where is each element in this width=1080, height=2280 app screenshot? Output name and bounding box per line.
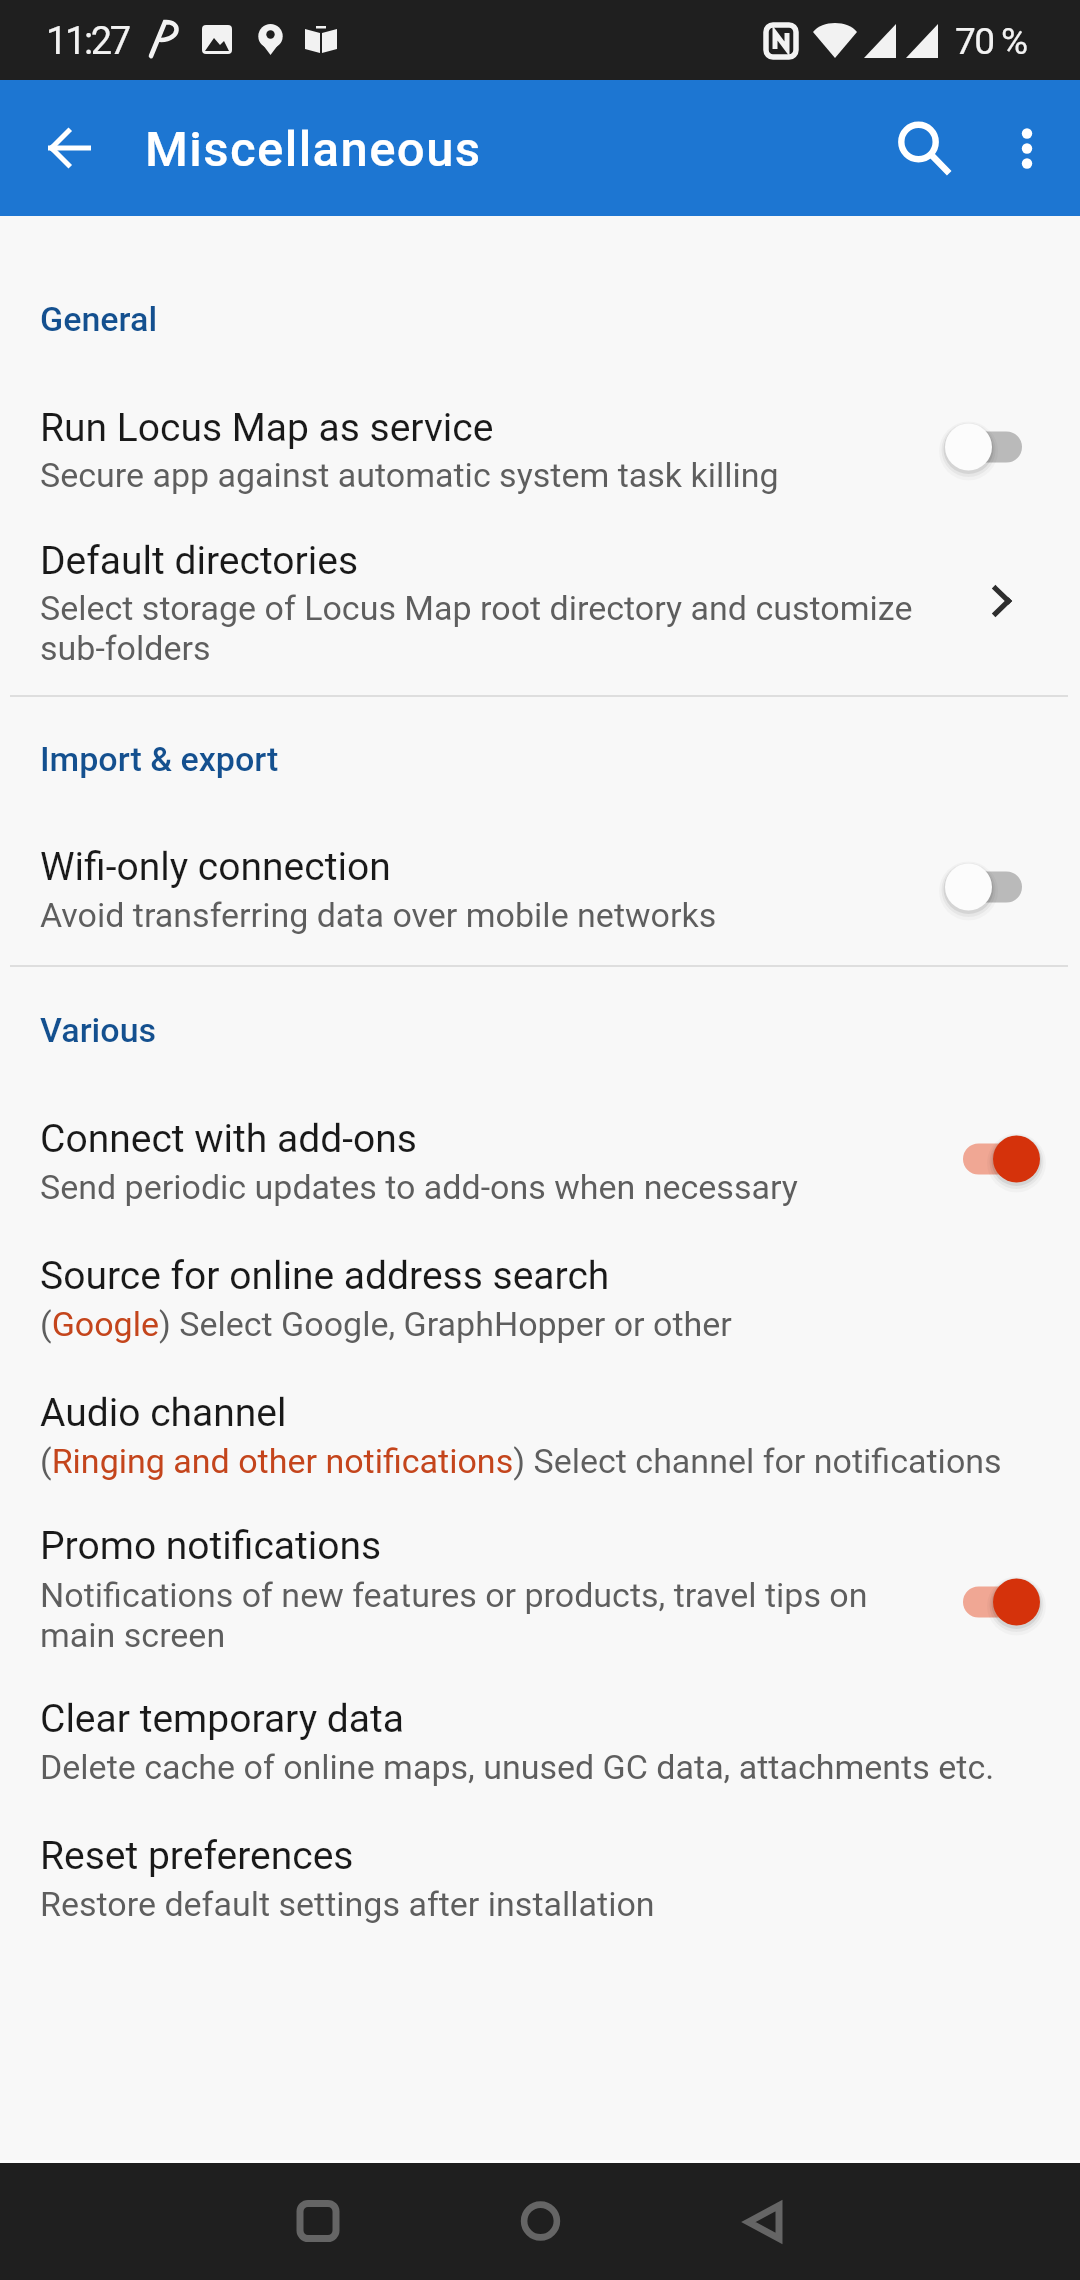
button[interactable]: Search <box>870 94 966 190</box>
button[interactable]: Reset preferences <box>0 1815 1080 1945</box>
button[interactable]: Promo notifications <box>0 1505 1080 1675</box>
staticText: main screen <box>40 1615 1050 1655</box>
staticText: (Google) Select Google, GraphHopper or o… <box>40 1304 1050 1344</box>
staticText: Promo notifications <box>40 1523 920 1569</box>
staticText: Default directories <box>40 538 920 584</box>
button[interactable]: Clear temporary data <box>0 1680 1080 1810</box>
button[interactable]: Source for online address search <box>0 1232 1080 1362</box>
staticText: 70 % <box>955 20 1080 63</box>
button[interactable]: Switch on <box>918 1111 1060 1207</box>
staticText: Reset preferences <box>40 1833 920 1879</box>
staticText: Audio channel <box>40 1390 920 1436</box>
staticText: sub-folders <box>40 628 1050 668</box>
staticText: Notifications of new features or product… <box>40 1575 1050 1615</box>
button[interactable]: Switch off <box>918 839 1060 935</box>
staticText: Miscellaneous <box>145 121 1080 178</box>
staticText: Send periodic updates to add-ons when ne… <box>40 1167 1050 1207</box>
button[interactable]: Switch off <box>918 399 1060 495</box>
staticText: Run Locus Map as service <box>40 405 920 451</box>
button[interactable]: Default directories <box>0 515 1080 690</box>
button[interactable]: Run Locus Map as service <box>0 380 1080 512</box>
staticText: Various <box>40 1010 1080 1050</box>
staticText: Source for online address search <box>40 1253 920 1299</box>
button[interactable]: Home <box>490 2171 590 2271</box>
button[interactable]: Navigate up <box>22 100 118 196</box>
staticText: General <box>40 299 1080 339</box>
button[interactable]: Recent apps <box>268 2171 368 2271</box>
button[interactable]: Wifi-only connection <box>0 820 1080 950</box>
staticText: Select storage of Locus Map root directo… <box>40 588 1050 628</box>
button[interactable]: More options <box>979 94 1075 190</box>
staticText: 11:27 <box>46 19 1080 64</box>
staticText: Wifi-only connection <box>40 844 920 890</box>
staticText: Avoid transferring data over mobile netw… <box>40 895 1050 935</box>
staticText: Import & export <box>40 739 1080 779</box>
staticText: Connect with add-ons <box>40 1116 920 1162</box>
staticText: Secure app against automatic system task… <box>40 455 1050 495</box>
staticText: Clear temporary data <box>40 1696 920 1742</box>
button[interactable]: Open default directories <box>960 559 1044 643</box>
staticText: (Ringing and other notifications) Select… <box>40 1441 1050 1481</box>
button[interactable]: Connect with add-ons <box>0 1095 1080 1225</box>
staticText: Restore default settings after installat… <box>40 1884 1050 1924</box>
staticText: Delete cache of online maps, unused GC d… <box>40 1747 1050 1787</box>
button[interactable]: Switch on <box>918 1554 1060 1650</box>
button[interactable]: Back <box>713 2171 813 2271</box>
button[interactable]: Audio channel <box>0 1369 1080 1499</box>
